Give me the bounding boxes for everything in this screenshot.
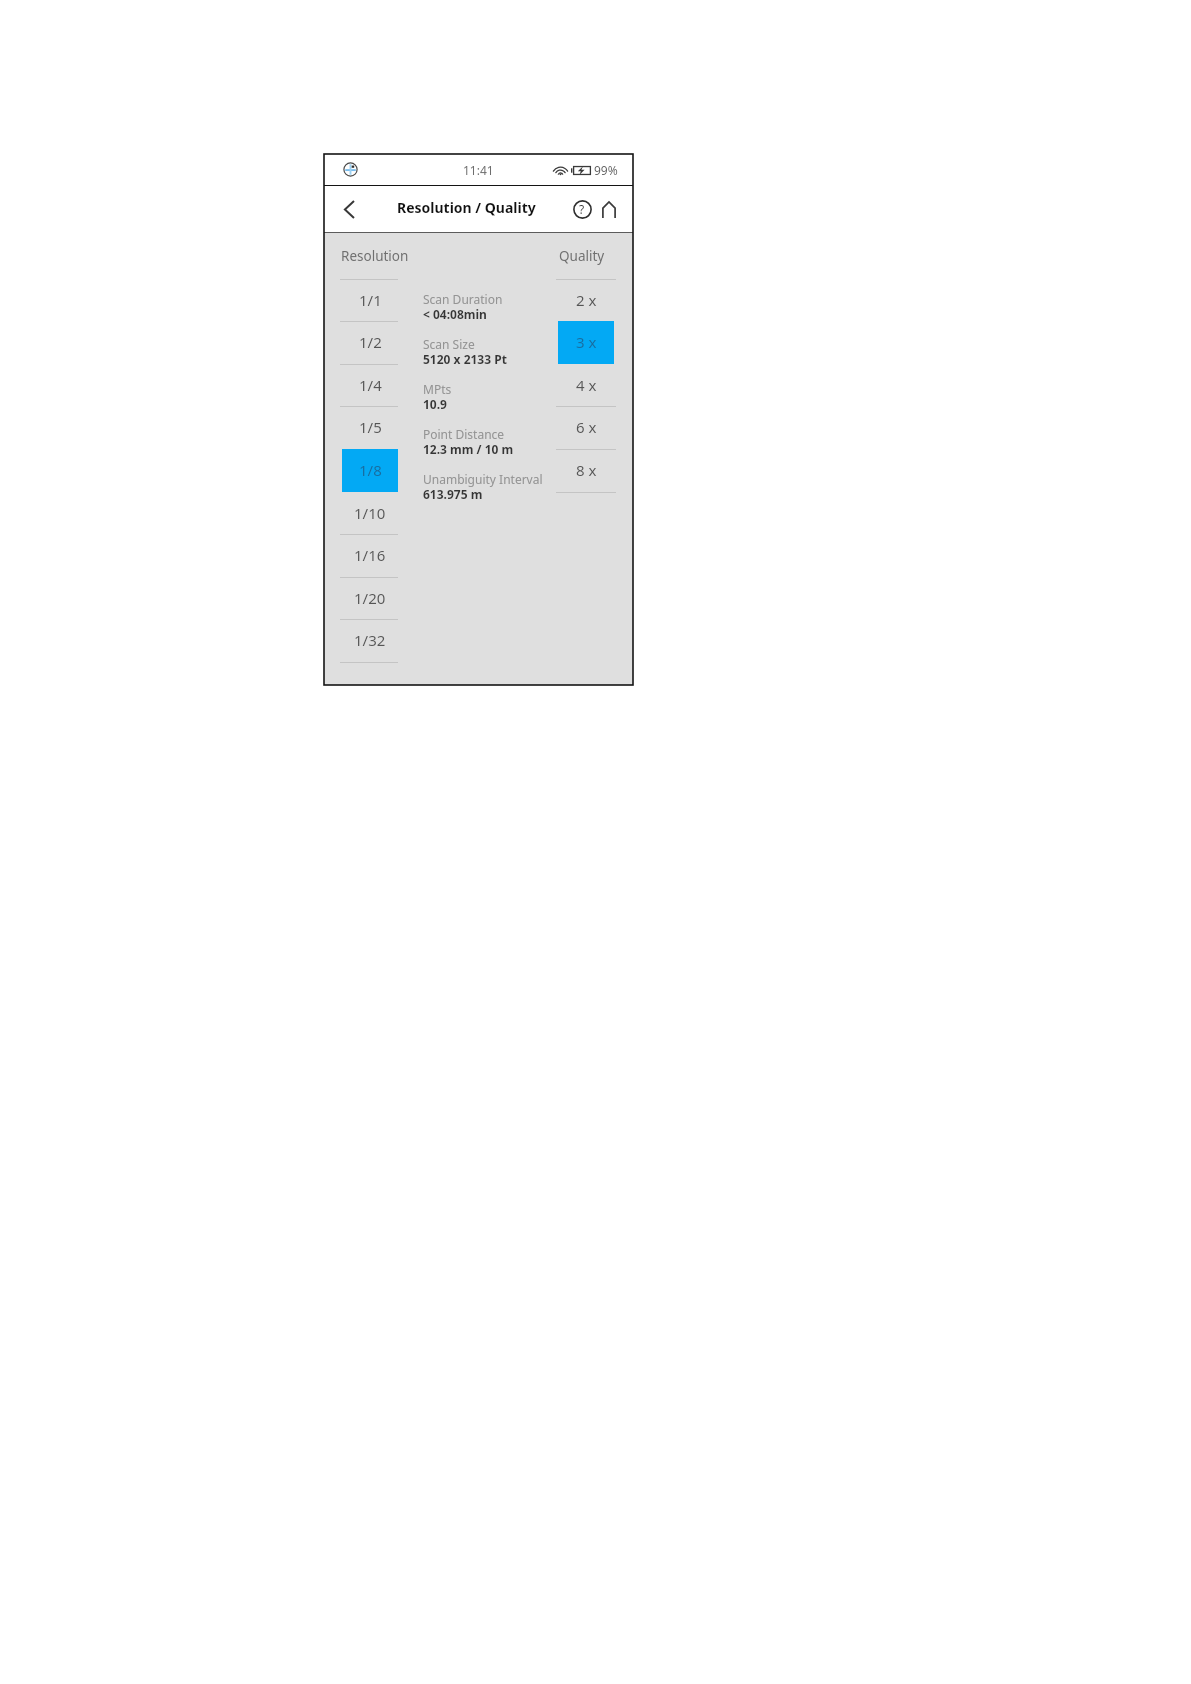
staticText: 1/32 <box>354 630 386 650</box>
button[interactable]: 1/5 <box>342 406 398 449</box>
staticText: 4 x <box>576 375 597 395</box>
button[interactable]: App icon <box>343 162 358 177</box>
staticText: ? <box>579 201 585 217</box>
button[interactable]: 1/4 <box>342 364 398 407</box>
button[interactable]: 3 x <box>558 321 614 364</box>
staticText: Quality <box>559 247 605 265</box>
staticText: 1/4 <box>359 375 382 395</box>
staticText: 1/10 <box>354 503 386 523</box>
button[interactable]: 1/2 <box>342 321 398 364</box>
staticText: 1/20 <box>354 588 386 608</box>
staticText: 6 x <box>576 417 597 437</box>
button[interactable]: Home <box>596 196 622 222</box>
staticText: 12.3 mm / 10 m <box>423 441 514 457</box>
staticText: 1/2 <box>359 332 382 352</box>
button[interactable]: Help <box>569 196 595 222</box>
button[interactable]: 1/20 <box>342 577 398 620</box>
staticText: 1/1 <box>359 290 382 310</box>
staticText: Resolution / Quality <box>397 198 536 217</box>
button[interactable]: 6 x <box>558 406 614 449</box>
staticText: 99% <box>594 162 618 178</box>
staticText: 10.9 <box>423 396 447 412</box>
staticText: < 04:08min <box>423 306 487 322</box>
button[interactable]: 1/16 <box>342 534 398 577</box>
button[interactable]: 1/10 <box>342 492 398 535</box>
staticText: 8 x <box>576 460 597 480</box>
staticText: 2 x <box>576 290 597 310</box>
staticText: Point Distance <box>423 426 505 442</box>
button[interactable]: 1/1 <box>342 279 398 322</box>
button[interactable]: 1/32 <box>342 619 398 662</box>
staticText: Scan Duration <box>423 291 503 307</box>
button[interactable]: 8 x <box>558 449 614 492</box>
staticText: 3 x <box>576 332 597 352</box>
button[interactable]: 2 x <box>558 279 614 322</box>
staticText: 613.975 m <box>423 486 483 502</box>
staticText: 5120 x 2133 Pt <box>423 351 507 367</box>
staticText: 1/16 <box>354 545 386 565</box>
staticText: 1/8 <box>359 460 382 480</box>
staticText: Scan Size <box>423 336 475 352</box>
button[interactable]: Back <box>336 196 362 222</box>
staticText: 11:41 <box>463 162 494 178</box>
button[interactable]: 1/8 <box>342 449 398 492</box>
staticText: MPts <box>423 381 452 397</box>
staticText: Resolution <box>341 247 409 265</box>
staticText: Unambiguity Interval <box>423 471 543 487</box>
staticText: 1/5 <box>359 417 382 437</box>
button[interactable]: 4 x <box>558 364 614 407</box>
